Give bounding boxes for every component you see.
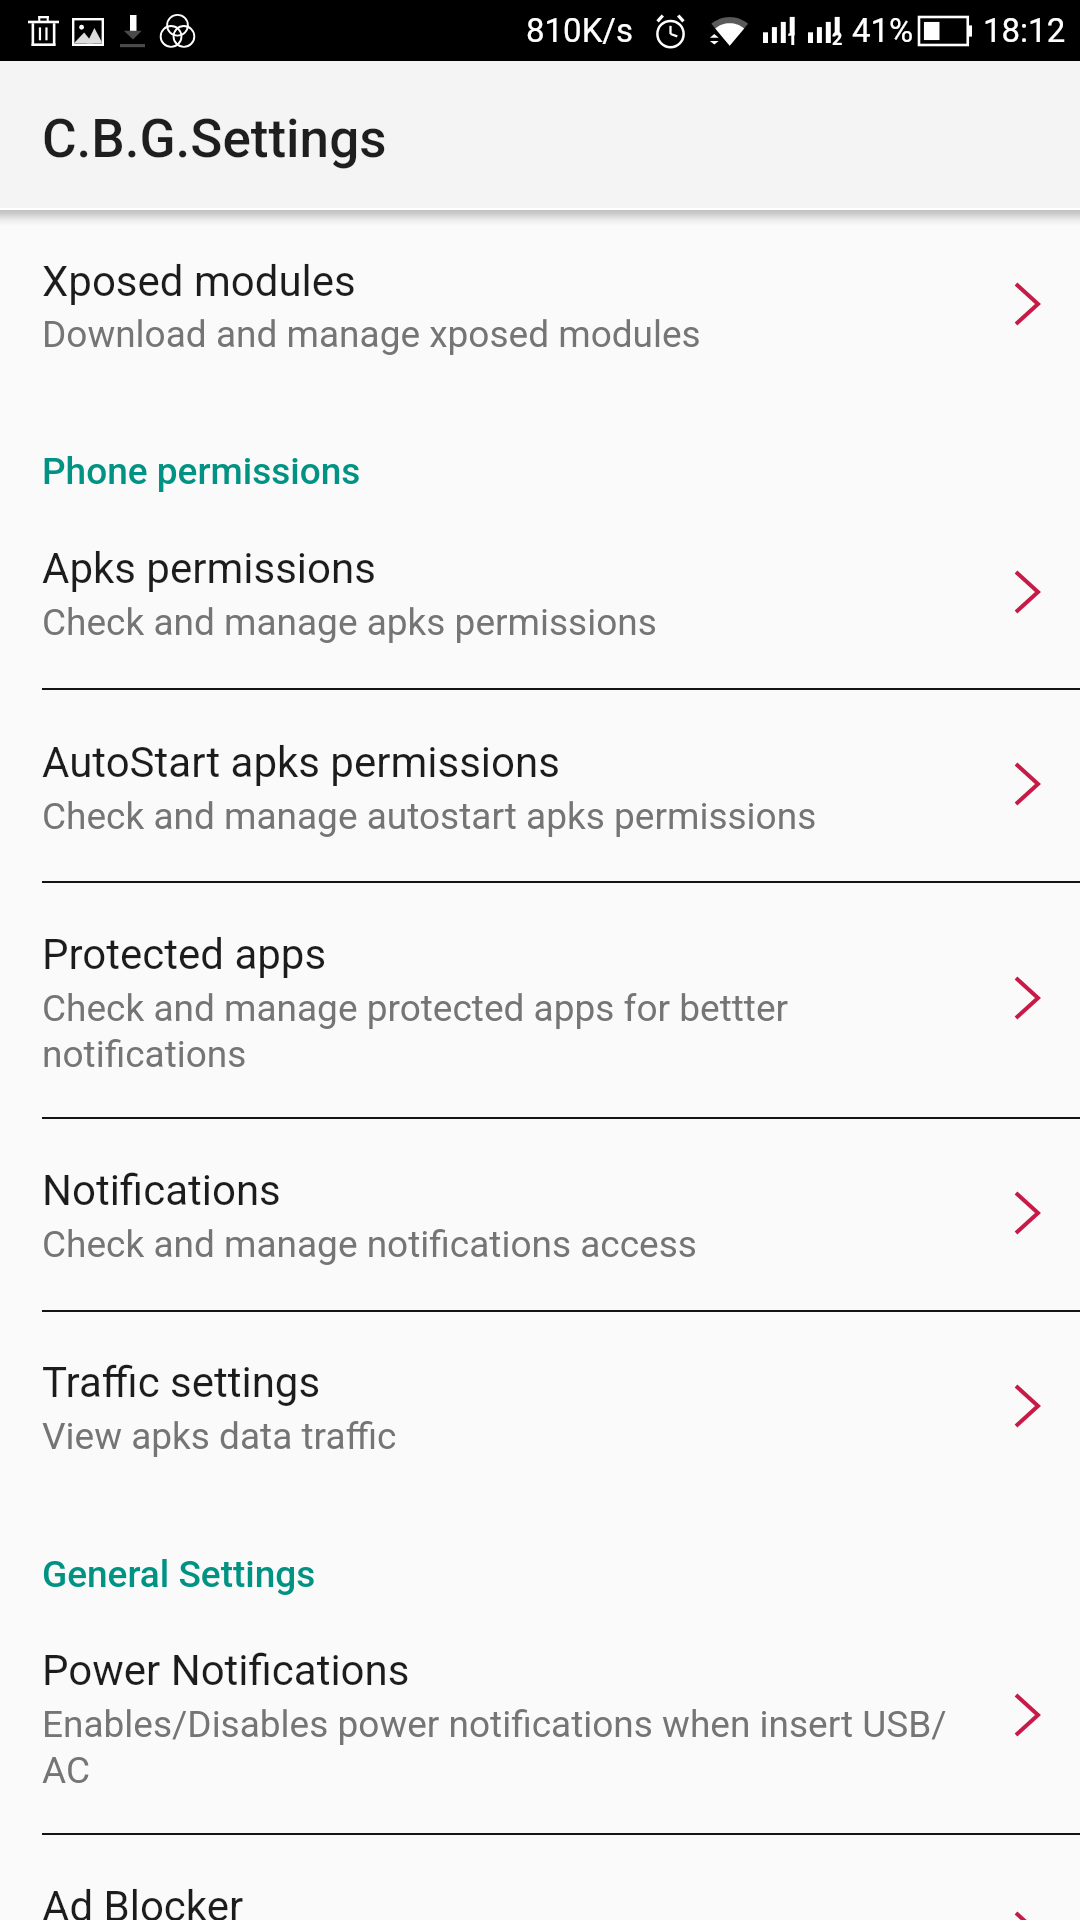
- other: Open: [1004, 754, 1064, 814]
- staticText: Traffic settings: [42, 1358, 321, 1407]
- button[interactable]: AutoStart apks permissions: [0, 689, 1080, 881]
- button[interactable]: Apks permissions: [0, 500, 1080, 688]
- staticText: Check and manage apks permissions: [42, 601, 657, 644]
- staticText: Apks permissions: [42, 544, 376, 593]
- other: Open: [1004, 1903, 1064, 1920]
- staticText: 2: [832, 28, 843, 49]
- other: Open: [1004, 1183, 1064, 1243]
- button[interactable]: Power Notifications: [0, 1600, 1080, 1833]
- other: Open: [1004, 968, 1064, 1028]
- staticText: AutoStart apks permissions: [42, 738, 560, 787]
- staticText: Ad Blocker: [42, 1882, 244, 1920]
- staticText: Download and manage xposed modules: [42, 313, 701, 356]
- other: Open: [1004, 562, 1064, 622]
- staticText: Check and manage autostart apks permissi…: [42, 795, 817, 838]
- button[interactable]: Notifications: [0, 1118, 1080, 1310]
- button[interactable]: C.B.G.Settings: [42, 108, 387, 170]
- staticText: Power Notifications: [42, 1646, 410, 1695]
- staticText: 41%: [852, 11, 914, 50]
- staticText: 810K/s: [526, 11, 633, 50]
- other: Open: [1004, 1376, 1064, 1436]
- staticText: Phone permissions: [42, 450, 361, 493]
- staticText: General Settings: [42, 1553, 316, 1596]
- button[interactable]: Protected apps: [0, 882, 1080, 1117]
- staticText: Notifications: [42, 1166, 281, 1215]
- button[interactable]: Xposed modules: [0, 217, 1080, 430]
- staticText: Check and manage protected apps for bett…: [42, 987, 822, 1076]
- staticText: Check and manage notifications access: [42, 1223, 697, 1266]
- staticText: 1: [787, 28, 798, 49]
- staticText: 18:12: [983, 11, 1066, 50]
- other: Open: [1004, 1685, 1064, 1745]
- staticText: Enables/Disables power notifications whe…: [42, 1703, 972, 1792]
- button[interactable]: Traffic settings: [0, 1311, 1080, 1500]
- staticText: Xposed modules: [42, 257, 356, 306]
- staticText: Protected apps: [42, 930, 327, 979]
- staticText: View apks data traffic: [42, 1415, 397, 1458]
- button[interactable]: Ad Blocker: [0, 1834, 1080, 1920]
- other: Open: [1004, 274, 1064, 334]
